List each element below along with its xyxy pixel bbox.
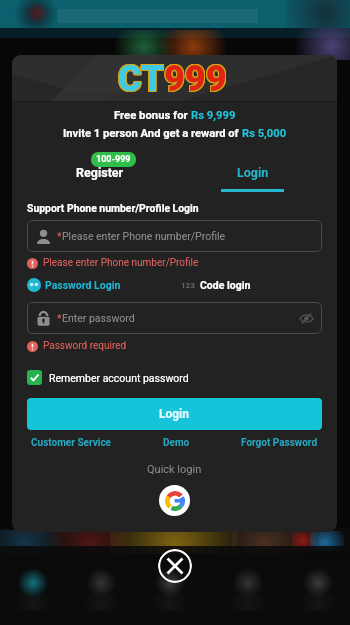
staticText: Support Phone number/Profile Login	[27, 202, 199, 214]
staticText: Remember account password	[49, 372, 189, 384]
staticText: 999	[164, 57, 227, 99]
staticText: Rs 5,000	[242, 127, 287, 140]
staticText: Code login	[200, 279, 251, 291]
staticText: Login	[159, 407, 190, 421]
button[interactable]: *	[27, 220, 322, 252]
staticText: Rs 9,999	[191, 109, 236, 122]
staticText: CT	[119, 58, 165, 100]
staticText: CT	[117, 57, 163, 99]
staticText: Quick login	[147, 463, 202, 476]
button[interactable]: Sign in with Google	[159, 485, 190, 516]
staticText: 999	[163, 58, 226, 100]
staticText: 999	[165, 59, 228, 101]
staticText: Register	[76, 165, 124, 180]
staticText: Please enter Phone number/Profile	[62, 230, 226, 242]
button[interactable]: Close	[158, 549, 192, 583]
staticText: 999	[164, 59, 227, 101]
staticText: 999	[165, 57, 228, 99]
staticText: *	[57, 230, 62, 242]
staticText: Invite 1 person And get a reward of	[63, 127, 242, 140]
staticText: Enter password	[62, 312, 135, 324]
staticText: CT	[118, 59, 164, 101]
button[interactable]: *	[27, 302, 322, 334]
staticText: CT	[118, 58, 164, 100]
button[interactable]: 123	[181, 279, 251, 291]
button[interactable]: Login	[27, 398, 322, 430]
staticText: CT	[119, 59, 165, 101]
staticText: CT	[117, 58, 163, 100]
button[interactable]: Remember account password	[27, 370, 189, 385]
button[interactable]: Customer Service	[31, 437, 112, 449]
staticText: 999	[163, 57, 226, 99]
staticText: 999	[164, 58, 227, 100]
staticText: Password Login	[45, 279, 121, 291]
staticText: Please enter Phone number/Profile	[43, 257, 199, 269]
staticText: CT	[118, 57, 164, 99]
button[interactable]: Password Login	[27, 278, 121, 292]
staticText: CT	[119, 57, 165, 99]
staticText: *	[57, 312, 62, 324]
staticText: Password required	[43, 340, 127, 352]
button[interactable]: Show password	[299, 311, 314, 326]
button[interactable]: Login	[193, 151, 312, 197]
staticText: 999	[163, 59, 226, 101]
staticText: 100-999	[96, 154, 131, 165]
staticText: 123	[181, 281, 195, 290]
staticText: Free bonus for	[114, 109, 191, 122]
staticText: 999	[165, 58, 228, 100]
staticText: CT	[117, 59, 163, 101]
button[interactable]: Demo	[163, 437, 190, 449]
button[interactable]: Register	[40, 151, 159, 197]
staticText: Login	[237, 165, 269, 180]
button[interactable]: Forgot Password	[241, 437, 318, 449]
